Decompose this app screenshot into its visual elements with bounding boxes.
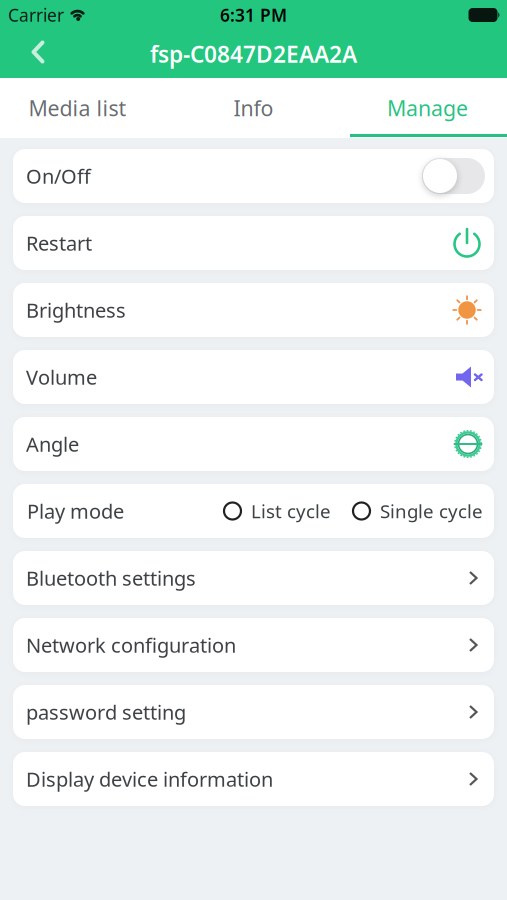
staticText: Bluetooth settings [26, 565, 196, 591]
staticText: Carrier [8, 3, 64, 26]
staticText: On/Off [26, 163, 91, 189]
staticText: Play mode [27, 498, 124, 524]
staticText: Angle [26, 431, 79, 457]
button[interactable]: Brightness [13, 283, 494, 337]
button[interactable]: Media list [0, 78, 169, 138]
staticText: Restart [26, 230, 92, 256]
button[interactable]: On/Off [422, 158, 485, 194]
staticText: Info [233, 94, 273, 122]
button[interactable]: Volume [13, 350, 494, 404]
staticText: Media list [28, 94, 126, 122]
staticText: List cycle [251, 499, 331, 523]
staticText: Volume [26, 364, 97, 390]
button[interactable]: password setting [13, 685, 494, 739]
button[interactable]: List cycle [224, 499, 331, 523]
button[interactable]: Display device information [13, 752, 494, 806]
button[interactable]: Bluetooth settings [13, 551, 494, 605]
staticText: Display device information [26, 766, 273, 792]
button[interactable]: Back [18, 30, 58, 78]
staticText: password setting [26, 699, 186, 725]
button[interactable]: Manage [338, 78, 507, 138]
staticText: Manage [387, 94, 468, 122]
staticText: fsp-C0847D2EAA2A [150, 39, 357, 69]
staticText: Brightness [26, 297, 126, 323]
button[interactable]: Network configuration [13, 618, 494, 672]
button[interactable]: Angle [13, 417, 494, 471]
staticText: 6:31 PM [220, 3, 287, 26]
button[interactable]: Info [169, 78, 338, 138]
button[interactable]: Single cycle [353, 499, 483, 523]
button[interactable]: Restart [13, 216, 494, 270]
staticText: Network configuration [26, 632, 236, 658]
staticText: Single cycle [380, 499, 483, 523]
